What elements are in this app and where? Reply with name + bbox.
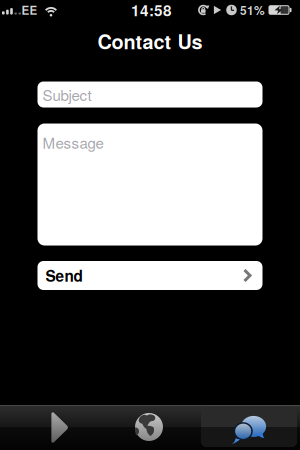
staticText: EE xyxy=(21,2,37,18)
staticText: Contact Us xyxy=(97,27,202,55)
button[interactable]: Browse xyxy=(114,405,184,449)
button[interactable]: Message xyxy=(37,123,262,245)
button[interactable]: Chat xyxy=(201,407,297,447)
button[interactable]: Subject xyxy=(37,81,262,107)
staticText: Message xyxy=(42,131,103,153)
staticText: 51% xyxy=(240,1,265,19)
button[interactable]: Play xyxy=(16,405,86,449)
staticText: 14:58 xyxy=(131,0,172,21)
button[interactable]: Send xyxy=(37,261,262,290)
staticText: Send xyxy=(45,264,82,286)
staticText: Subject xyxy=(42,84,91,105)
